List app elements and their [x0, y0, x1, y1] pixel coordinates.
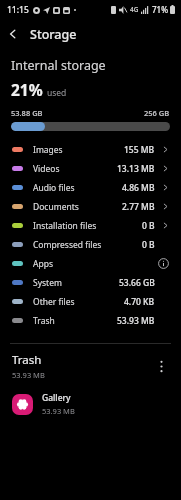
other: App info	[158, 258, 169, 269]
staticText: Videos	[33, 163, 60, 175]
staticText: 4.70 KB	[124, 296, 155, 308]
staticText: 53.88 GB	[11, 108, 43, 118]
staticText: 4G	[130, 5, 139, 14]
button[interactable]: Gallery	[0, 389, 181, 419]
staticText: Compressed files	[33, 239, 102, 251]
staticText: 21%	[11, 79, 43, 100]
staticText: 0 B	[142, 220, 155, 232]
staticText: 0 B	[142, 239, 155, 251]
button[interactable]: Back	[0, 21, 26, 47]
staticText: 71%	[152, 4, 168, 15]
staticText: used	[47, 87, 67, 99]
button[interactable]: Installation files	[0, 216, 181, 235]
button[interactable]: Images	[0, 140, 181, 159]
staticText: 53.93 MB	[12, 370, 45, 380]
staticText: Apps	[33, 258, 53, 270]
button[interactable]: System	[0, 273, 181, 292]
button[interactable]: Compressed files	[0, 235, 181, 254]
staticText: 4.86 MB	[122, 182, 155, 194]
staticText: 53.66 GB	[119, 277, 155, 289]
staticText: Trash	[12, 352, 42, 368]
staticText: 13.13 MB	[117, 163, 155, 175]
staticText: 11:15	[7, 4, 29, 16]
staticText: Trash	[33, 315, 55, 327]
staticText: Installation files	[33, 220, 97, 232]
staticText: Internal storage	[11, 57, 106, 74]
button[interactable]: Documents	[0, 197, 181, 216]
staticText: Audio files	[33, 182, 75, 194]
staticText: Gallery	[42, 392, 71, 404]
staticText: Documents	[33, 201, 79, 213]
button[interactable]: More options	[153, 356, 169, 376]
staticText: 2.77 MB	[122, 201, 155, 213]
staticText: 53.93 MB	[42, 406, 75, 416]
staticText: Images	[33, 144, 63, 156]
staticText: 53.93 MB	[117, 315, 155, 327]
button[interactable]: Other files	[0, 292, 181, 311]
button[interactable]: Apps	[0, 254, 181, 273]
staticText: 256 GB	[144, 108, 170, 118]
button[interactable]: Audio files	[0, 178, 181, 197]
button[interactable]: Videos	[0, 159, 181, 178]
staticText: Storage	[30, 26, 77, 43]
staticText: System	[33, 277, 62, 289]
staticText: Other files	[33, 296, 75, 308]
button[interactable]: Trash	[0, 311, 181, 330]
staticText: 155 MB	[124, 144, 155, 156]
